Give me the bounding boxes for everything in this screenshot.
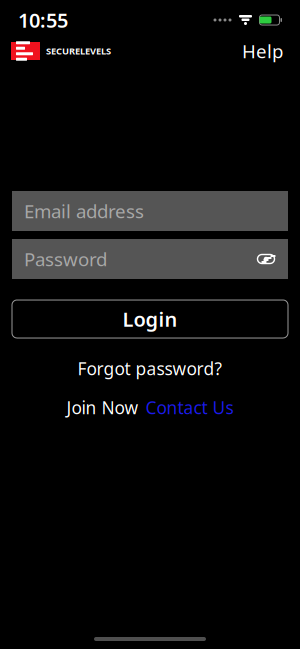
staticText: Help xyxy=(242,39,283,63)
staticText: Forgot password? xyxy=(77,357,222,380)
staticText: SECURELEVELS xyxy=(46,45,111,57)
staticText: Password xyxy=(24,247,107,271)
staticText: Login xyxy=(122,306,177,332)
staticText: Contact Us xyxy=(145,396,233,419)
button[interactable]: Show password xyxy=(252,245,280,273)
button[interactable]: Contact Us xyxy=(145,391,233,424)
staticText: Join Now xyxy=(66,396,138,419)
button[interactable]: Help xyxy=(236,34,289,68)
button[interactable]: Join Now xyxy=(66,391,138,424)
staticText: 10:55 xyxy=(18,7,68,33)
button[interactable]: Forgot password? xyxy=(67,352,232,385)
staticText: Email address xyxy=(24,199,144,223)
button[interactable]: Login xyxy=(12,300,288,338)
